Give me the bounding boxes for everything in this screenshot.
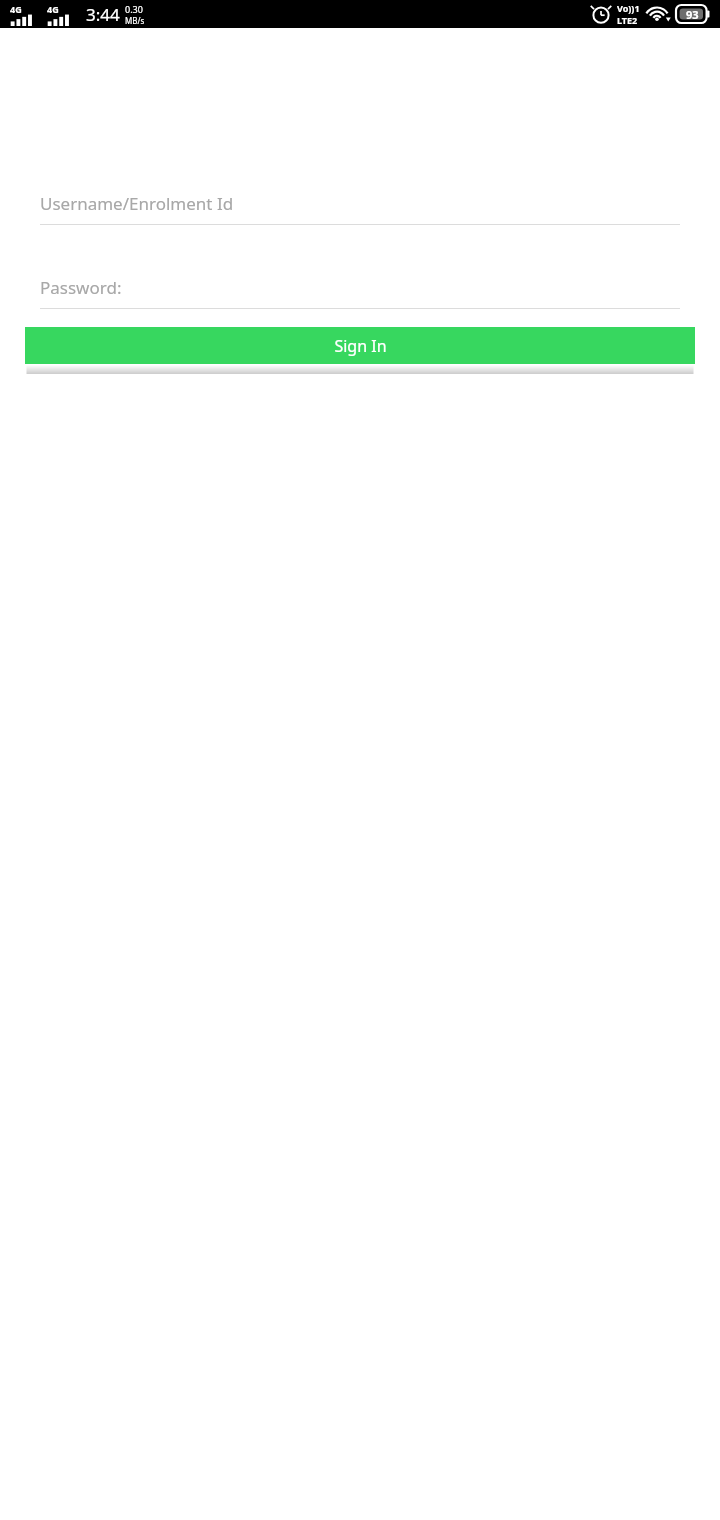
staticText: 3:44 bbox=[86, 3, 120, 26]
staticText: Password: bbox=[40, 276, 122, 299]
button[interactable]: Username/Enrolment Id bbox=[40, 188, 680, 225]
staticText: Username/Enrolment Id bbox=[40, 192, 234, 215]
staticText: 0.30 bbox=[125, 3, 143, 15]
button[interactable]: Password: bbox=[40, 272, 680, 309]
staticText: 4G bbox=[47, 3, 59, 15]
staticText: 93 bbox=[686, 7, 699, 22]
button[interactable]: Sign In bbox=[25, 327, 695, 364]
staticText: 4G bbox=[10, 3, 22, 15]
staticText: LTE2 bbox=[617, 14, 638, 26]
staticText: Vo))1 bbox=[617, 2, 640, 14]
staticText: Sign In bbox=[334, 335, 387, 357]
staticText: MB/s bbox=[125, 15, 145, 26]
